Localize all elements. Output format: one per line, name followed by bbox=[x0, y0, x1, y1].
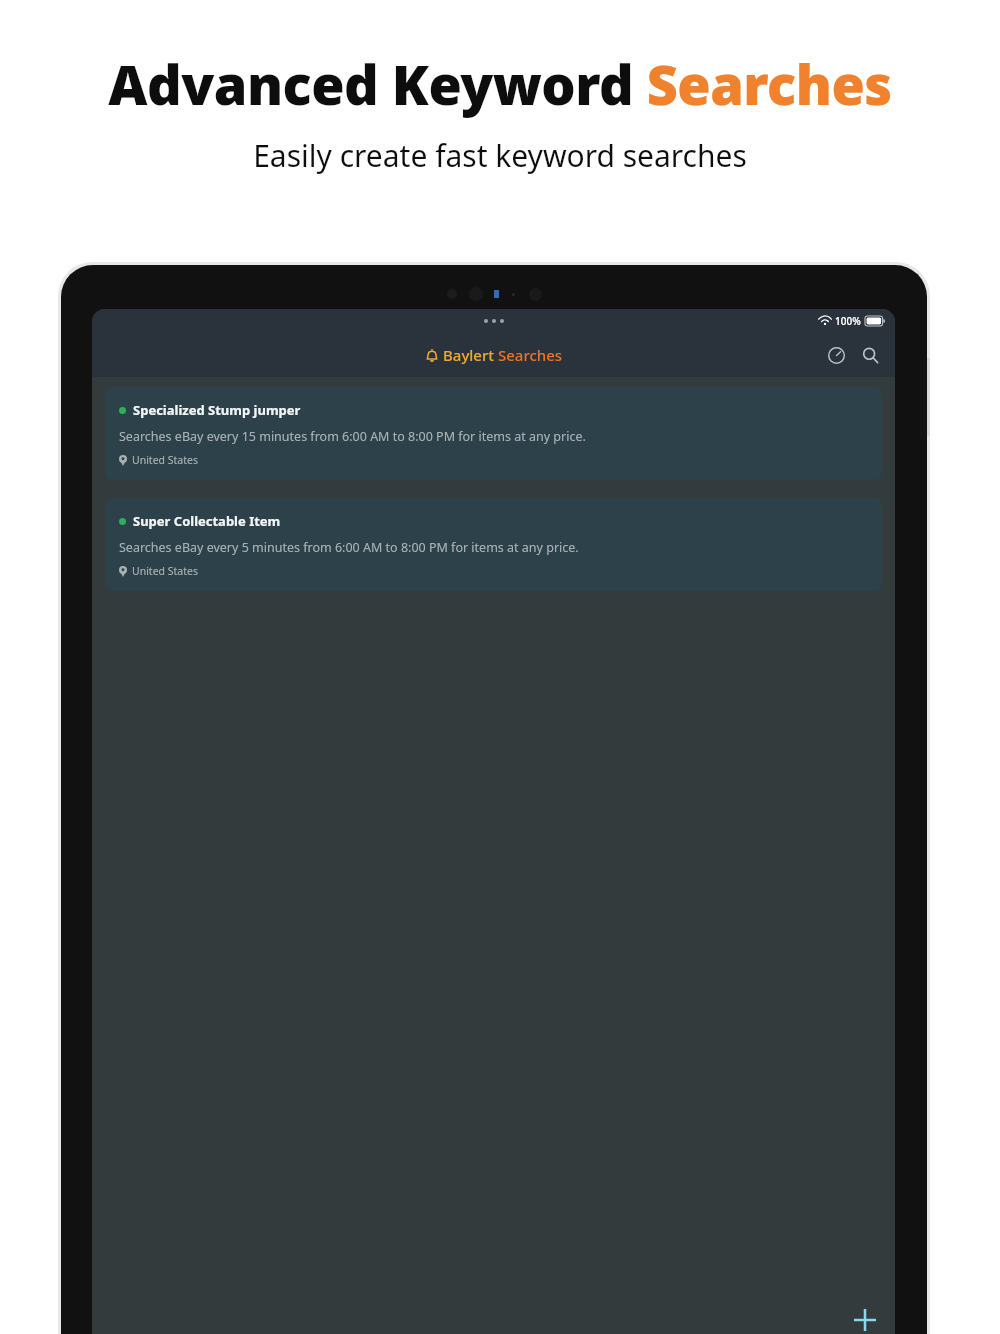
button[interactable]: Dashboard bbox=[821, 340, 851, 370]
staticText: Searches eBay every 15 minutes from 6:00… bbox=[119, 428, 586, 445]
staticText: Searches eBay every 5 minutes from 6:00 … bbox=[119, 539, 579, 556]
staticText: United States bbox=[132, 453, 198, 467]
button[interactable]: Search bbox=[855, 340, 885, 370]
button[interactable]: Specialized Stump jumper bbox=[105, 387, 882, 480]
staticText: 100% bbox=[835, 314, 861, 328]
staticText: United States bbox=[132, 564, 198, 578]
button[interactable]: Add search bbox=[843, 1298, 887, 1334]
staticText: Easily create fast keyword searches bbox=[253, 135, 747, 176]
staticText: Advanced Keyword Searches bbox=[108, 47, 892, 121]
staticText: Super Collectable Item bbox=[133, 512, 281, 530]
button[interactable]: Super Collectable Item bbox=[105, 498, 882, 591]
staticText: Baylert Searches bbox=[443, 345, 563, 365]
staticText: Specialized Stump jumper bbox=[133, 401, 301, 419]
